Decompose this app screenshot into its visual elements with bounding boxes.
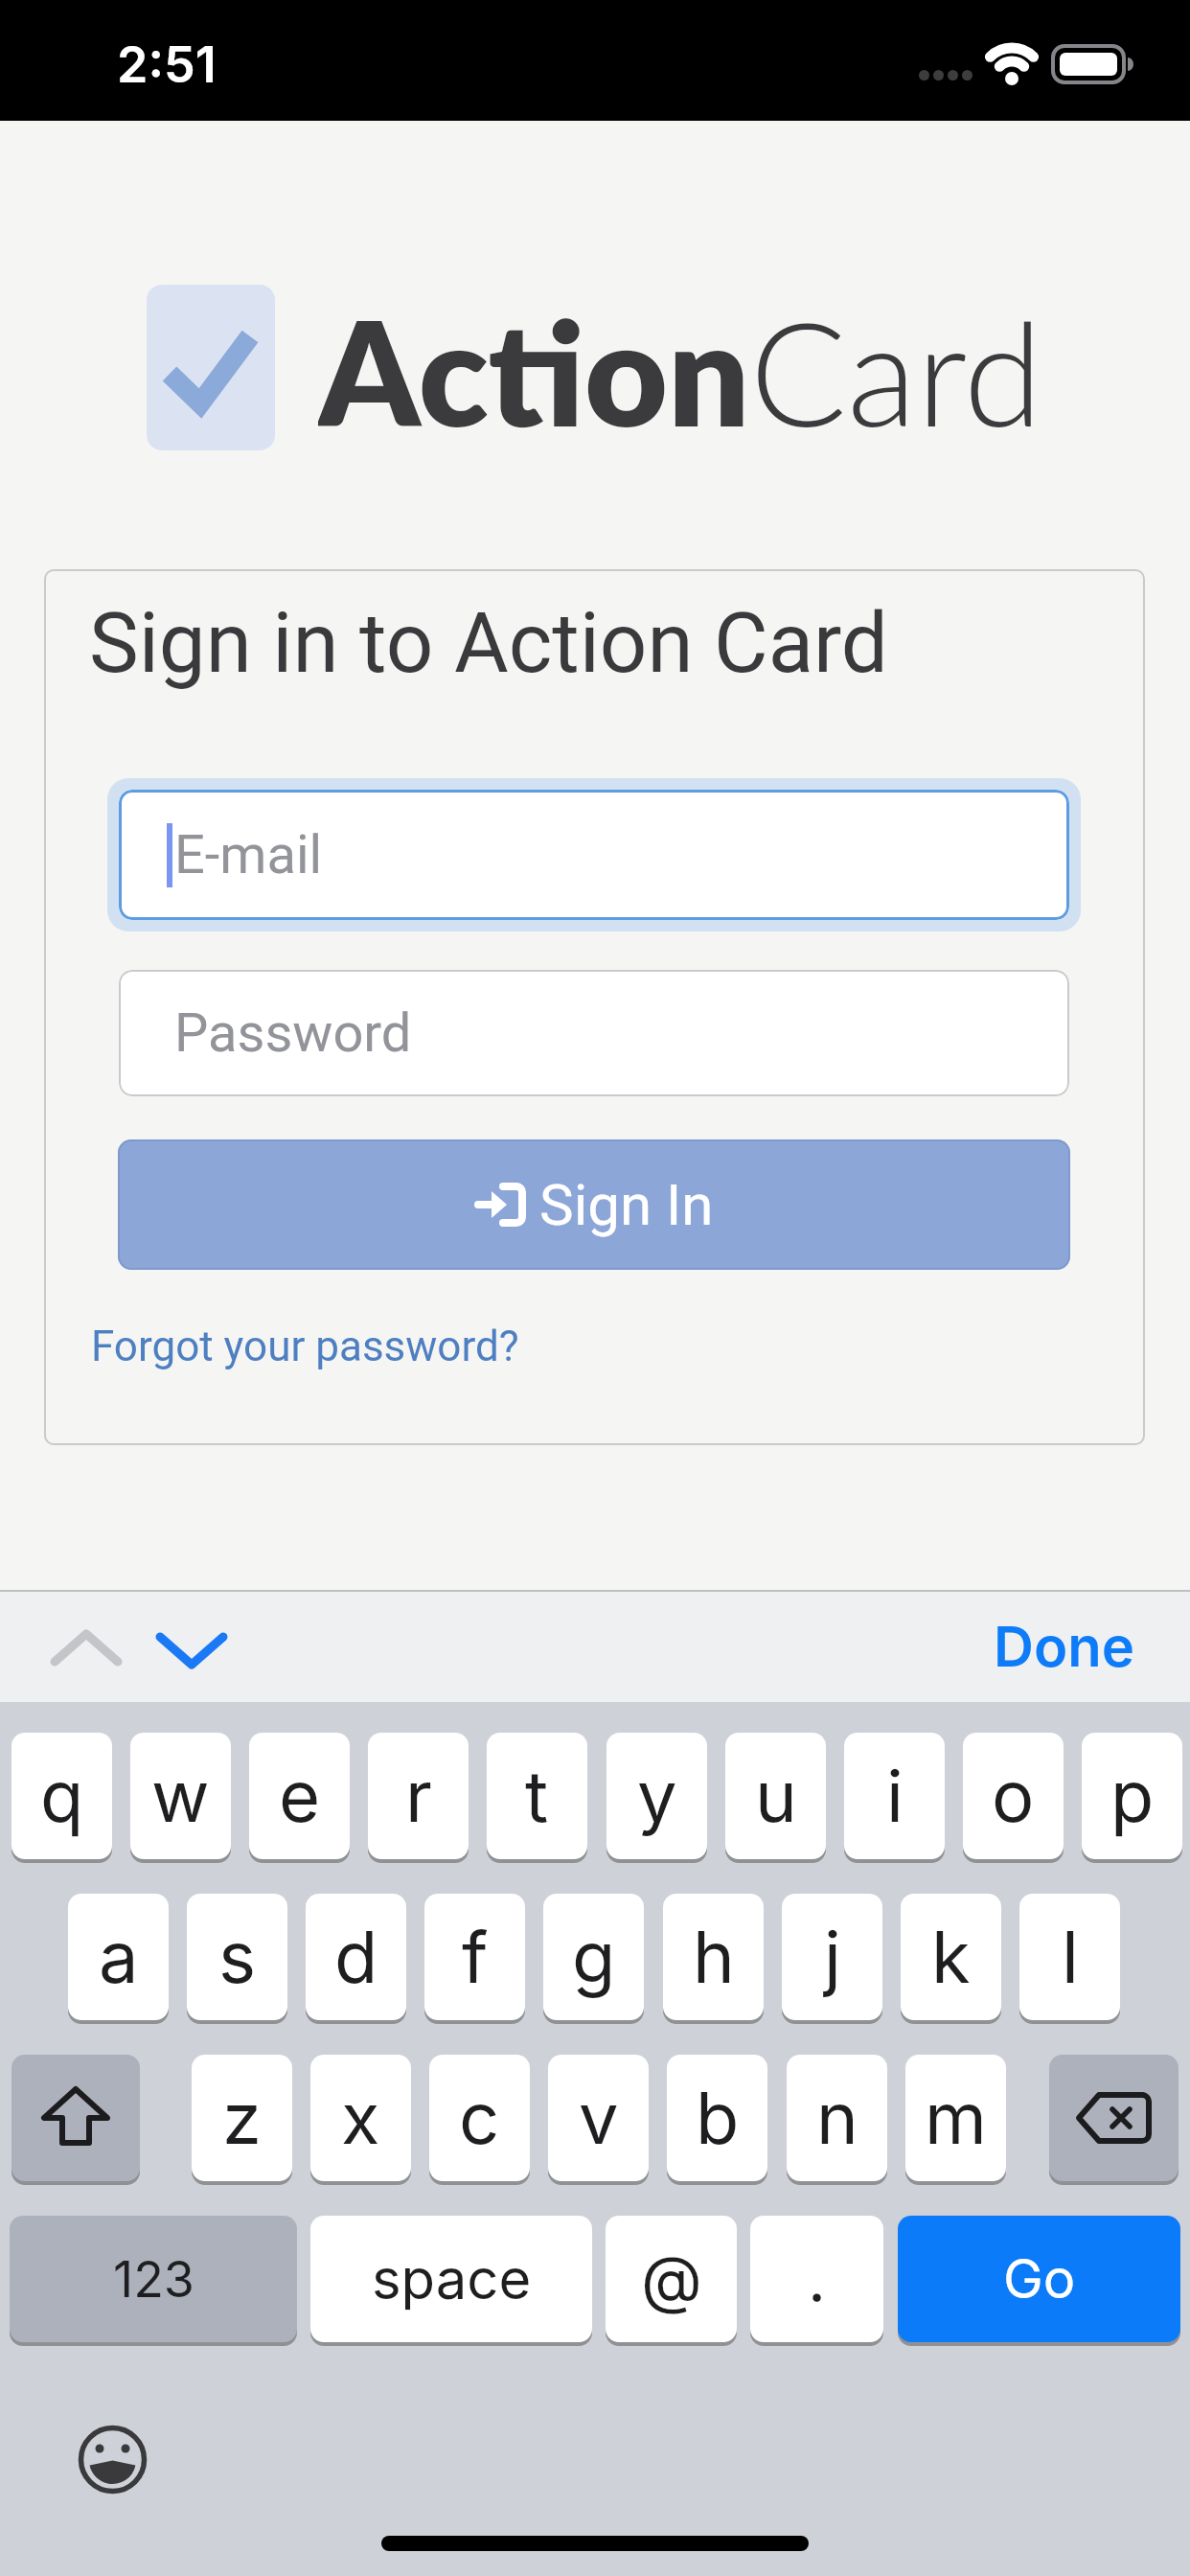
button[interactable] xyxy=(119,790,1069,920)
staticText: . xyxy=(808,2241,827,2317)
button[interactable]: a xyxy=(68,1894,169,2020)
staticText: w xyxy=(151,1753,210,1839)
staticText: Sign in to Action Card xyxy=(89,594,888,692)
staticText: a xyxy=(99,1914,139,2000)
staticText: Forgot your password? xyxy=(91,1322,519,1371)
button[interactable]: p xyxy=(1082,1733,1182,1859)
button[interactable]: h xyxy=(663,1894,764,2020)
button[interactable]: @ xyxy=(606,2216,737,2342)
button[interactable]: n xyxy=(787,2055,887,2181)
button[interactable]: b xyxy=(667,2055,767,2181)
button[interactable]: space xyxy=(310,2216,592,2342)
staticText: @ xyxy=(641,2241,702,2317)
button[interactable]: w xyxy=(130,1733,231,1859)
staticText: b xyxy=(696,2075,740,2161)
button[interactable]: z xyxy=(192,2055,292,2181)
staticText: f xyxy=(462,1914,489,2000)
staticText: x xyxy=(341,2075,380,2161)
button[interactable]: r xyxy=(368,1733,469,1859)
staticText: d xyxy=(334,1914,378,2000)
button[interactable]: 123 xyxy=(10,2216,297,2342)
staticText: o xyxy=(992,1753,1035,1839)
button[interactable] xyxy=(38,1613,134,1690)
button[interactable]: . xyxy=(750,2216,883,2342)
staticText: j xyxy=(824,1914,841,2000)
staticText: g xyxy=(572,1914,616,2000)
button[interactable]: k xyxy=(901,1894,1001,2020)
staticText: m xyxy=(925,2075,987,2161)
staticText: k xyxy=(931,1914,971,2000)
button[interactable]: c xyxy=(429,2055,530,2181)
button[interactable]: j xyxy=(782,1894,882,2020)
staticText: h xyxy=(693,1914,735,2000)
staticText: u xyxy=(755,1753,797,1839)
button[interactable]: g xyxy=(543,1894,644,2020)
button[interactable]: Sign In xyxy=(118,1139,1070,1270)
button[interactable] xyxy=(1049,2055,1179,2181)
button[interactable]: m xyxy=(905,2055,1006,2181)
staticText: n xyxy=(816,2075,858,2161)
button[interactable]: l xyxy=(1019,1894,1120,2020)
staticText: y xyxy=(637,1753,677,1839)
staticText: t xyxy=(525,1753,549,1839)
staticText: Password xyxy=(174,1001,412,1065)
staticText: q xyxy=(40,1753,84,1839)
staticText: v xyxy=(579,2075,619,2161)
button[interactable]: t xyxy=(487,1733,587,1859)
button[interactable]: y xyxy=(606,1733,707,1859)
staticText: 123 xyxy=(113,2249,195,2310)
button[interactable]: u xyxy=(725,1733,826,1859)
button[interactable]: q xyxy=(11,1733,112,1859)
button[interactable]: e xyxy=(249,1733,350,1859)
staticText: i xyxy=(886,1753,904,1839)
staticText: c xyxy=(459,2075,500,2161)
button[interactable] xyxy=(78,2425,148,2495)
button[interactable]: d xyxy=(306,1894,406,2020)
staticText: z xyxy=(222,2075,262,2161)
button[interactable]: v xyxy=(548,2055,649,2181)
button[interactable]: Go xyxy=(898,2216,1180,2342)
button[interactable]: s xyxy=(187,1894,287,2020)
button[interactable]: i xyxy=(844,1733,945,1859)
button[interactable] xyxy=(11,2055,140,2181)
button[interactable]: x xyxy=(310,2055,411,2181)
staticText: 2:51 xyxy=(117,34,217,92)
staticText: l xyxy=(1062,1914,1079,2000)
staticText: Sign In xyxy=(539,1171,714,1238)
button[interactable] xyxy=(144,1613,240,1690)
staticText: ActionCard xyxy=(318,285,1043,450)
button[interactable]: f xyxy=(424,1894,525,2020)
staticText: p xyxy=(1110,1753,1155,1839)
staticText: space xyxy=(372,2245,532,2312)
button[interactable]: o xyxy=(963,1733,1064,1859)
button[interactable] xyxy=(119,970,1069,1096)
button[interactable]: Done xyxy=(994,1613,1134,1680)
staticText: r xyxy=(405,1753,432,1839)
staticText: Go xyxy=(1003,2246,1076,2311)
button[interactable]: Forgot your password? xyxy=(91,1320,519,1373)
staticText: s xyxy=(218,1914,257,2000)
staticText: e xyxy=(279,1753,321,1839)
staticText: E-mail xyxy=(174,823,323,886)
